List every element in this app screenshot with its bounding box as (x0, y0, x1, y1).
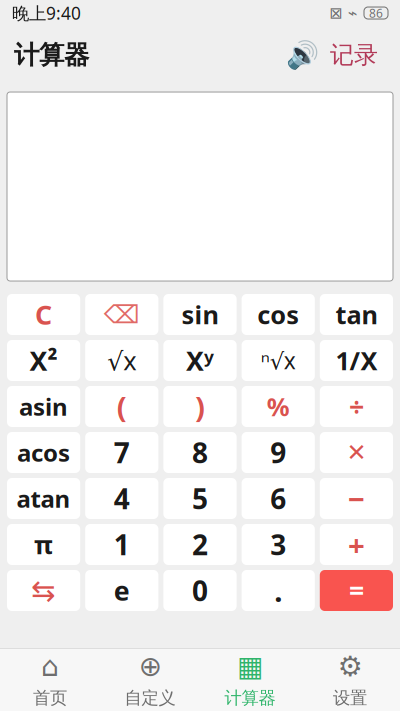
staticText: 8 (192, 434, 208, 471)
staticText: ⊠ (329, 4, 342, 22)
button[interactable]: ✕ (320, 432, 393, 473)
staticText: 首页 (33, 687, 67, 708)
button[interactable]: ) (163, 386, 237, 427)
staticText: 计算器 (14, 39, 89, 70)
staticText: ⌂ (41, 650, 59, 682)
staticText: acos (17, 437, 70, 468)
staticText: 🔊 (285, 40, 318, 70)
button[interactable]: ⌫ (85, 294, 158, 335)
button[interactable]: 9 (242, 432, 315, 473)
staticText: 记录 (330, 40, 378, 70)
staticText: 86 (369, 5, 383, 21)
staticText: 计算器 (224, 687, 275, 708)
staticText: 7 (114, 434, 130, 471)
staticText: 2 (192, 526, 208, 563)
staticText: cos (257, 298, 299, 331)
staticText: 4 (114, 480, 130, 517)
button[interactable]: asin (7, 386, 80, 427)
button[interactable]: . (242, 570, 315, 611)
button[interactable]: 1 (85, 524, 158, 565)
staticText: atan (17, 483, 71, 514)
button[interactable]: ⌂ (0, 648, 100, 711)
staticText: ▦ (237, 650, 263, 682)
button[interactable]: ▦ (200, 648, 300, 711)
staticText: 自定义 (124, 687, 175, 708)
button[interactable]: 记录 (322, 35, 386, 75)
staticText: − (348, 479, 365, 518)
staticText: ⌫ (104, 300, 140, 329)
button[interactable]: 7 (85, 432, 158, 473)
button[interactable]: 0 (163, 570, 237, 611)
button[interactable]: cos (242, 294, 315, 335)
staticText: ⚙ (337, 650, 362, 682)
staticText: 1/X (335, 344, 377, 377)
staticText: 1 (114, 526, 130, 563)
staticText: 0 (192, 572, 208, 609)
staticText: asin (19, 391, 68, 422)
button[interactable]: Xʸ (163, 340, 237, 381)
button[interactable]: atan (7, 478, 80, 519)
staticText: ⁿ√x (261, 345, 296, 375)
staticText: √x (107, 344, 136, 377)
button[interactable]: + (320, 524, 393, 565)
staticText: ) (195, 387, 205, 426)
staticText: ÷ (349, 389, 364, 424)
button[interactable]: ÷ (320, 386, 393, 427)
button[interactable]: X² (7, 340, 80, 381)
staticText: ⌁ (348, 4, 358, 22)
button[interactable]: 3 (242, 524, 315, 565)
staticText: = (349, 573, 364, 608)
button[interactable]: ⁿ√x (242, 340, 315, 381)
staticText: 6 (270, 480, 286, 517)
staticText: X² (30, 343, 58, 378)
button[interactable]: − (320, 478, 393, 519)
staticText: 设置 (333, 687, 367, 708)
staticText: C (35, 297, 52, 332)
button[interactable]: 5 (163, 478, 237, 519)
staticText: tan (335, 298, 377, 331)
staticText: 3 (270, 526, 286, 563)
button[interactable]: tan (320, 294, 393, 335)
button[interactable]: 4 (85, 478, 158, 519)
button[interactable]: ⇆ (7, 570, 80, 611)
button[interactable]: % (242, 386, 315, 427)
staticText: ✕ (346, 439, 366, 466)
button[interactable]: ⊕ (100, 648, 200, 711)
button[interactable]: ( (85, 386, 158, 427)
staticText: ⇆ (31, 574, 56, 607)
button[interactable]: 1/X (320, 340, 393, 381)
staticText: 9 (270, 434, 286, 471)
button[interactable]: √x (85, 340, 158, 381)
staticText: + (348, 525, 365, 564)
staticText: ⊕ (138, 650, 161, 682)
button[interactable]: C (7, 294, 80, 335)
staticText: sin (181, 298, 218, 331)
staticText: π (34, 528, 53, 561)
button[interactable]: = (320, 570, 393, 611)
button[interactable]: Sound (282, 35, 322, 75)
button[interactable]: π (7, 524, 80, 565)
staticText: % (267, 390, 290, 423)
staticText: 晚上9:40 (12, 1, 81, 24)
staticText: . (274, 571, 282, 610)
staticText: Xʸ (186, 343, 214, 378)
staticText: e (114, 573, 130, 608)
button[interactable]: acos (7, 432, 80, 473)
button[interactable]: 2 (163, 524, 237, 565)
button[interactable]: ⚙ (300, 648, 400, 711)
staticText: 5 (192, 480, 208, 517)
button[interactable]: sin (163, 294, 237, 335)
button[interactable]: 6 (242, 478, 315, 519)
button[interactable]: 8 (163, 432, 237, 473)
staticText: ( (117, 387, 127, 426)
button[interactable]: e (85, 570, 158, 611)
